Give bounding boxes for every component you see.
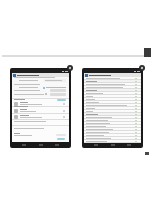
button[interactable]	[84, 131, 141, 134]
button[interactable]	[84, 125, 141, 128]
button[interactable]	[84, 83, 141, 86]
button[interactable]: Add	[57, 99, 66, 101]
button[interactable]	[12, 114, 69, 119]
button[interactable]	[84, 116, 141, 119]
button[interactable]	[12, 108, 69, 113]
button[interactable]: Text field	[44, 79, 66, 82]
button[interactable]	[84, 110, 141, 113]
button[interactable]	[84, 134, 141, 137]
button[interactable]	[84, 95, 141, 98]
button[interactable]	[84, 107, 141, 110]
button[interactable]	[84, 104, 141, 107]
button[interactable]	[84, 128, 141, 131]
button[interactable]	[84, 137, 141, 140]
button[interactable]	[84, 119, 141, 122]
button[interactable]	[84, 101, 141, 104]
button[interactable]	[84, 89, 141, 92]
button[interactable]	[84, 86, 141, 89]
button[interactable]	[84, 92, 141, 95]
button[interactable]: Save	[57, 138, 65, 140]
button[interactable]	[84, 80, 141, 83]
button[interactable]	[84, 113, 141, 116]
button[interactable]	[84, 77, 141, 80]
other: Camera	[67, 65, 73, 71]
button[interactable]	[84, 140, 141, 143]
button[interactable]	[12, 101, 69, 106]
button[interactable]	[84, 122, 141, 125]
other: Camera	[139, 65, 145, 71]
button[interactable]	[84, 98, 141, 101]
